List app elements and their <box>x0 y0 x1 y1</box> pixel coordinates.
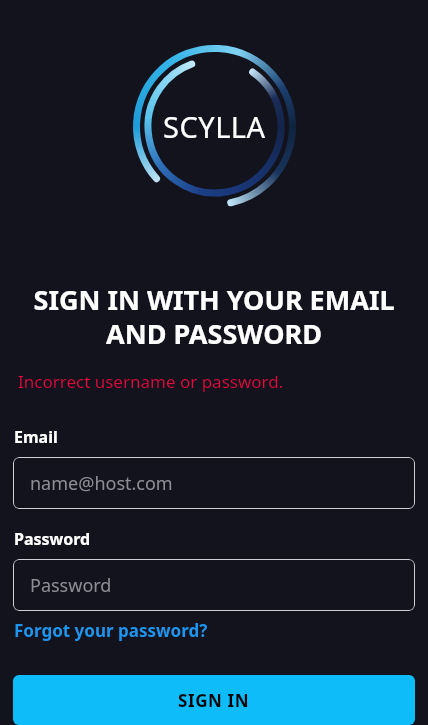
staticText: SCYLLA <box>163 107 266 146</box>
other: Scylla logo <box>132 44 297 209</box>
staticText: Forgot your password? <box>14 619 208 642</box>
staticText: SIGN IN WITH YOUR EMAIL AND PASSWORD <box>18 281 410 352</box>
staticText: Password <box>30 573 112 598</box>
staticText: Email <box>14 426 428 448</box>
staticText: SIGN IN <box>178 689 250 712</box>
staticText: Incorrect username or password. <box>18 370 428 393</box>
staticText: name@host.com <box>30 471 173 496</box>
button[interactable]: Password input field <box>13 559 415 611</box>
button[interactable]: Email input field <box>13 457 415 509</box>
button[interactable]: SIGN IN <box>13 675 415 725</box>
button[interactable]: Forgot your password? <box>13 617 209 644</box>
staticText: Password <box>14 528 428 550</box>
